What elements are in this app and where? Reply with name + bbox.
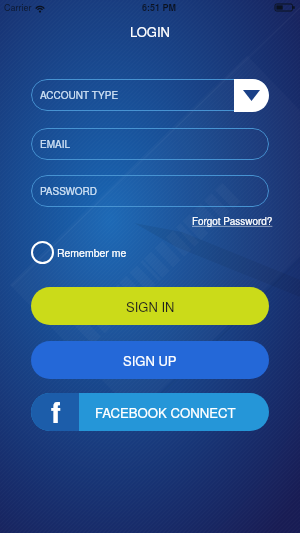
staticText: LOGIN xyxy=(130,22,170,41)
button[interactable]: EMAIL xyxy=(31,128,269,160)
staticText: SIGN UP xyxy=(123,351,177,370)
button[interactable]: f xyxy=(31,393,269,431)
button[interactable]: ACCOUNT TYPE xyxy=(31,79,269,111)
button[interactable]: SIGN UP xyxy=(31,341,269,379)
button[interactable]: Remember me xyxy=(31,241,127,264)
button[interactable]: SIGN IN xyxy=(31,287,269,325)
staticText: EMAIL xyxy=(40,137,71,151)
staticText: f xyxy=(51,393,61,428)
button[interactable]: Open account type list xyxy=(234,79,269,112)
button[interactable]: PASSWORD xyxy=(31,175,269,207)
staticText: Remember me xyxy=(57,245,127,260)
staticText: ACCOUNT TYPE xyxy=(40,88,119,102)
button[interactable]: Forgot Password? xyxy=(192,214,273,228)
staticText: Carrier xyxy=(4,1,32,14)
staticText: SIGN IN xyxy=(126,297,175,316)
staticText: PASSWORD xyxy=(40,184,98,198)
staticText: 6:51 PM xyxy=(142,1,177,14)
staticText: FACEBOOK CONNECT xyxy=(95,403,236,422)
